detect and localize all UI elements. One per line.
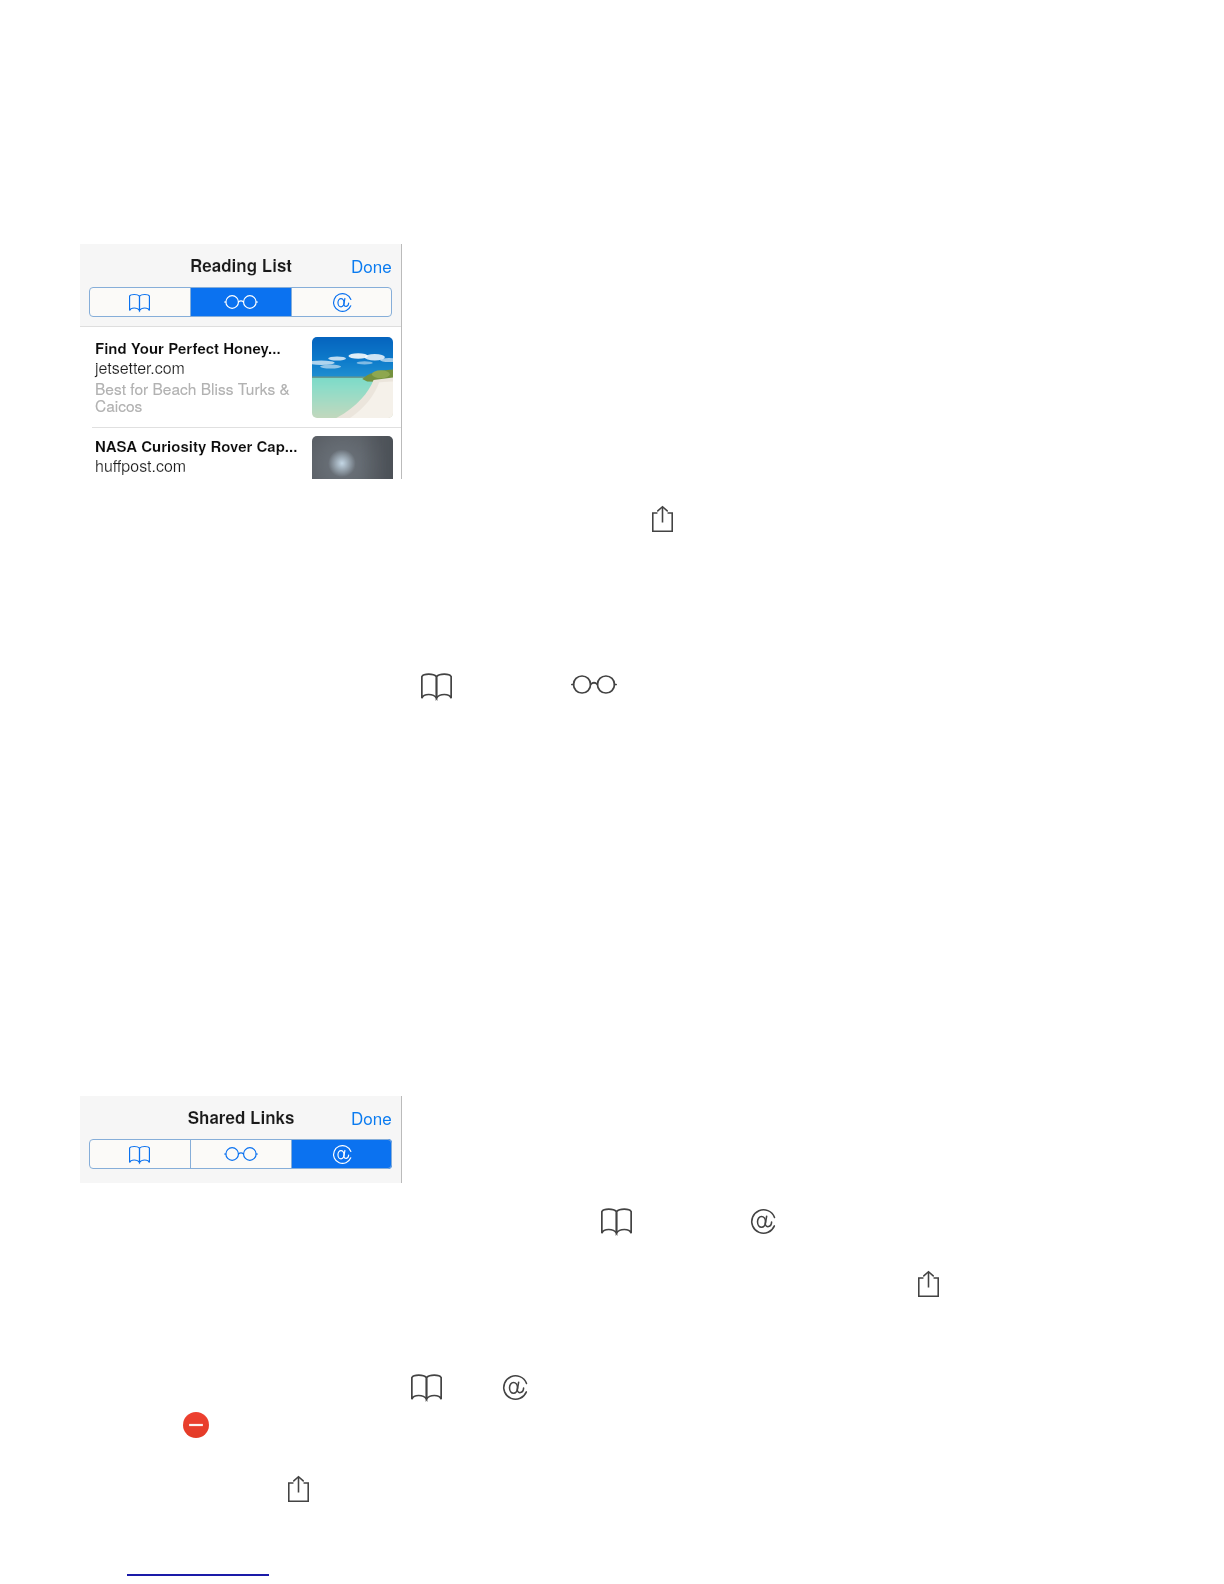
button[interactable] (89, 1139, 190, 1169)
staticText: jetsetter.com (95, 356, 317, 379)
staticText: Shared Links (80, 1105, 402, 1129)
staticText: Find Your Perfect Honey... (95, 337, 317, 358)
button[interactable]: Delete (183, 1412, 209, 1438)
button[interactable]: Share (652, 506, 673, 532)
button[interactable]: Share (288, 1476, 309, 1502)
staticText: Done (351, 1105, 392, 1129)
button[interactable]: Bookmarks (601, 1207, 632, 1234)
staticText: huffpost.com (95, 454, 317, 477)
button[interactable] (191, 1139, 291, 1169)
button[interactable]: Done (351, 1105, 392, 1129)
staticText: Done (351, 253, 392, 277)
button[interactable]: Shared Links (751, 1208, 776, 1235)
button[interactable] (191, 287, 291, 317)
button[interactable] (292, 1139, 392, 1169)
button[interactable]: Bookmarks (421, 672, 452, 699)
button[interactable]: Find Your Perfect Honey... (80, 327, 402, 427)
button[interactable]: NASA Curiosity Rover Cap... (80, 428, 402, 479)
button[interactable]: Bookmarks (411, 1373, 442, 1400)
staticText: Best for Beach Bliss Turks & Caicos (95, 377, 317, 417)
button[interactable]: Share (918, 1271, 939, 1297)
staticText: NASA Curiosity Rover Cap... (95, 435, 317, 456)
button[interactable] (89, 287, 190, 317)
button[interactable]: Reading List (571, 673, 617, 696)
staticText: Reading List (80, 253, 402, 277)
button[interactable] (292, 287, 392, 317)
button[interactable]: Shared Links (503, 1374, 528, 1401)
button[interactable]: Done (351, 253, 392, 277)
